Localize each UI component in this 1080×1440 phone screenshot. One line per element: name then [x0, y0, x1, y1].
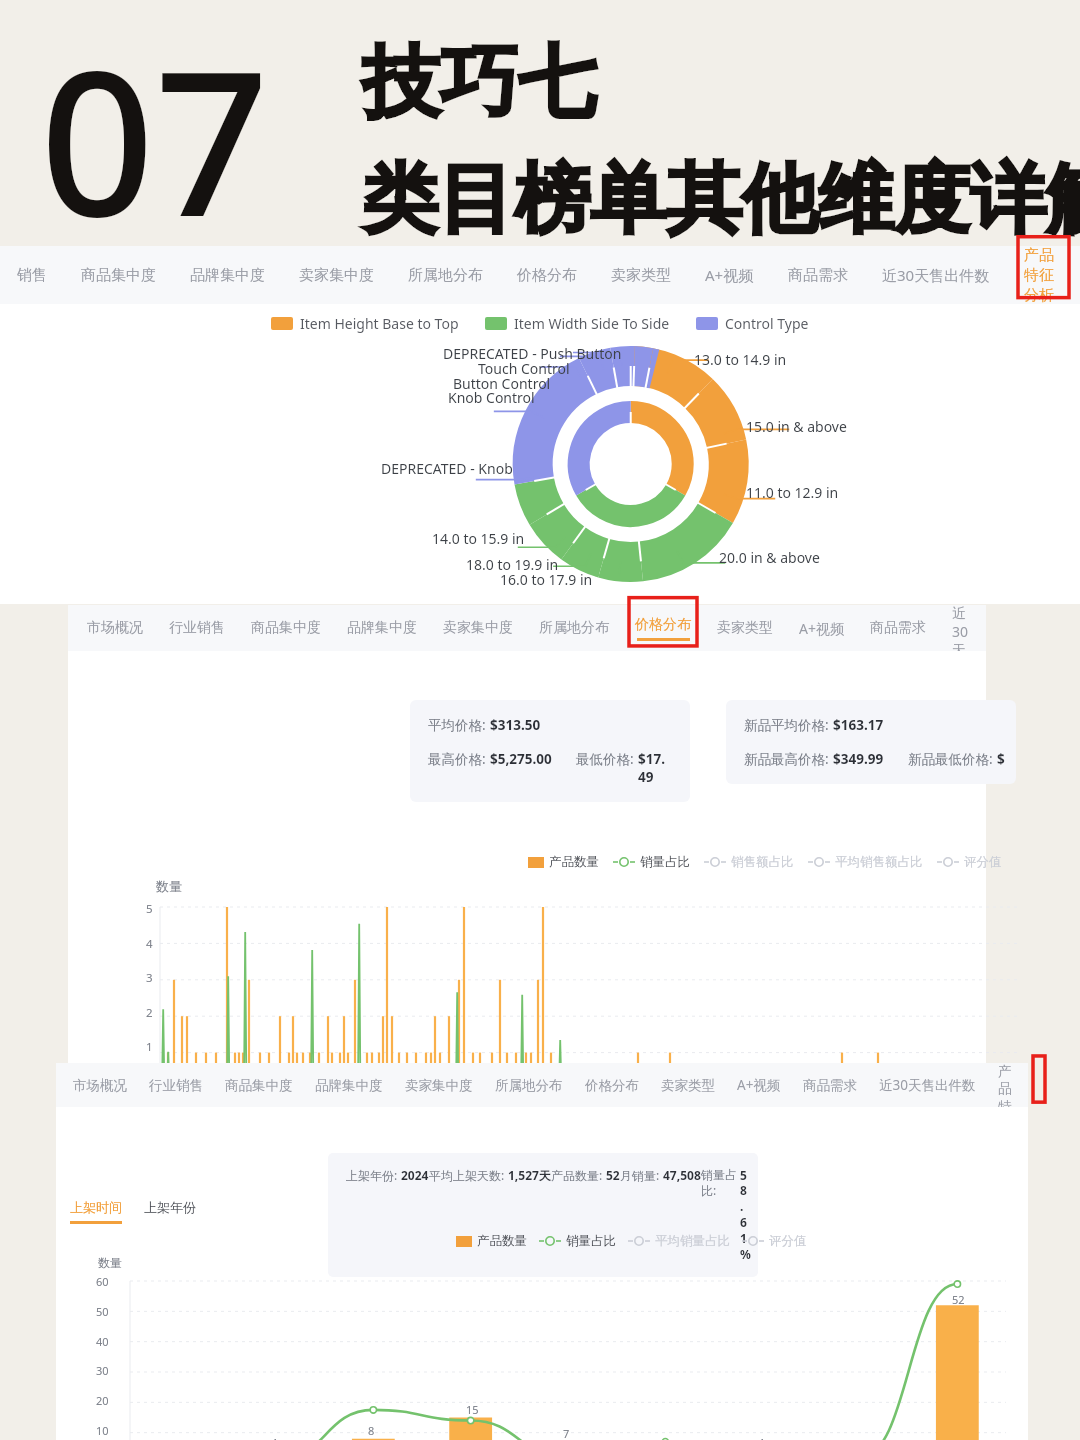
staticText: 10 [96, 1423, 109, 1438]
staticText: 新品平均价格: [744, 716, 833, 734]
button[interactable]: Item Width Side To Side [485, 314, 670, 333]
button[interactable]: 商品集中度 [238, 605, 334, 651]
button[interactable]: 所属地分布 [526, 605, 622, 651]
button[interactable]: 产品数量 [528, 854, 599, 870]
button[interactable]: 平均销量占比 [628, 1233, 730, 1249]
staticText: 近30天售出件数 [879, 1076, 976, 1094]
staticText: 新品最高价格: [744, 750, 833, 768]
button[interactable]: 上架年份 [144, 1199, 196, 1215]
staticText: $163.17 [833, 716, 884, 734]
button[interactable]: A+视频 [786, 605, 857, 651]
button[interactable]: 行业销售 [156, 605, 238, 651]
staticText: 销量占比: [701, 1167, 740, 1199]
staticText: A+视频 [799, 619, 844, 638]
button[interactable]: 平均销售额占比 [808, 854, 923, 870]
button[interactable]: 销量占比 [613, 854, 690, 870]
staticText: 卖家类型 [611, 266, 671, 285]
staticText: 价格分布 [517, 266, 577, 285]
staticText: 2 [146, 1005, 153, 1021]
button[interactable]: 产品特征分析 [1007, 246, 1080, 304]
button[interactable]: 上架时间 [70, 1199, 122, 1224]
button[interactable]: 价格分布 [500, 246, 594, 304]
button[interactable]: 近30天售出件数 [939, 605, 986, 651]
staticText: $313.50 [490, 716, 541, 734]
button[interactable]: 卖家集中度 [282, 246, 391, 304]
staticText: A+视频 [737, 1076, 781, 1094]
staticText: 卖家集中度 [405, 1077, 473, 1094]
button[interactable]: 商品集中度 [64, 246, 173, 304]
staticText: 价格分布 [585, 1077, 639, 1094]
staticText: 新品最低价格: [908, 750, 997, 768]
button[interactable]: 品牌集中度 [304, 1063, 394, 1107]
staticText: 商品集中度 [81, 266, 156, 285]
staticText: Item Height Base to Top [300, 314, 459, 333]
staticText: DEPRECATED - Push Button [443, 344, 622, 363]
button[interactable]: 销售额占比 [704, 854, 794, 870]
staticText: 市场概况 [73, 1077, 127, 1094]
button[interactable]: 商品需求 [857, 605, 939, 651]
button[interactable]: 所属地分布 [484, 1063, 574, 1107]
staticText: 18.0 to 19.9 in [466, 555, 559, 574]
staticText: Touch Control [478, 359, 570, 378]
staticText: 平均上架天数: [429, 1167, 508, 1183]
button[interactable]: 价格分布 [574, 1063, 650, 1107]
button[interactable]: 品牌集中度 [173, 246, 282, 304]
staticText: 商品需求 [870, 619, 926, 637]
staticText: 价格分布 [635, 616, 691, 634]
staticText: 20.0 in & above [719, 548, 820, 567]
button[interactable]: 价格分布 [622, 605, 704, 651]
staticText: 47,508 [663, 1167, 701, 1183]
button[interactable]: 商品需求 [771, 246, 865, 304]
button[interactable]: 评分值 [742, 1233, 807, 1249]
staticText: 所属地分布 [495, 1077, 563, 1094]
staticText: 近30天售出件数 [952, 605, 973, 651]
button[interactable]: Item Height Base to Top [271, 314, 459, 333]
button[interactable]: 近30天售出件数 [868, 1063, 987, 1107]
staticText: 数量 [156, 878, 182, 894]
staticText: 1 [146, 1039, 153, 1055]
staticText: Button Control [453, 374, 551, 393]
button[interactable]: A+视频 [688, 246, 771, 304]
staticText: 商品集中度 [251, 619, 321, 637]
staticText: 品牌集中度 [190, 266, 265, 285]
staticText: 上架时间 [70, 1199, 122, 1215]
button[interactable]: 市场概况 [74, 605, 156, 651]
staticText: 商品需求 [803, 1077, 857, 1094]
staticText: 7 [563, 1426, 570, 1440]
staticText: 平均销售额占比 [835, 854, 923, 870]
staticText: 品牌集中度 [347, 619, 417, 637]
button[interactable]: 卖家集中度 [430, 605, 526, 651]
staticText: 产品数量: [551, 1167, 606, 1183]
button[interactable]: 行业销售 [138, 1063, 214, 1107]
staticText: 评分值 [769, 1233, 807, 1249]
staticText: 15.0 in & above [746, 417, 847, 436]
button[interactable]: 商品需求 [792, 1063, 868, 1107]
button[interactable]: 商品集中度 [214, 1063, 304, 1107]
button[interactable]: 市场概况 [62, 1063, 138, 1107]
button[interactable]: 销量占比 [539, 1233, 616, 1249]
button[interactable]: Control Type [696, 314, 809, 333]
staticText: 平均销量占比 [655, 1233, 730, 1249]
staticText: 20 [96, 1393, 109, 1408]
button[interactable]: 评分值 [937, 854, 1002, 870]
button[interactable]: 卖家类型 [594, 246, 688, 304]
staticText: 市场概况 [87, 619, 143, 637]
staticText: 产品特征分析 [998, 1063, 1017, 1107]
staticText: 3 [146, 970, 153, 986]
staticText: DEPRECATED - Knob [381, 459, 513, 478]
button[interactable]: 品牌集中度 [334, 605, 430, 651]
button[interactable]: 产品特征分析 [987, 1063, 1028, 1107]
staticText: 13.0 to 14.9 in [694, 350, 787, 369]
button[interactable]: 卖家集中度 [394, 1063, 484, 1107]
staticText: $5,275.00 [490, 750, 552, 768]
staticText: 产品数量 [477, 1233, 527, 1249]
button[interactable]: A+视频 [726, 1063, 792, 1107]
button[interactable]: 销售 [0, 246, 64, 304]
staticText: $17.49 [638, 750, 672, 786]
button[interactable]: 卖家类型 [650, 1063, 726, 1107]
button[interactable]: 所属地分布 [391, 246, 500, 304]
button[interactable]: 近30天售出件数 [865, 246, 1007, 304]
button[interactable]: 卖家类型 [704, 605, 786, 651]
button[interactable]: 产品数量 [456, 1233, 527, 1249]
